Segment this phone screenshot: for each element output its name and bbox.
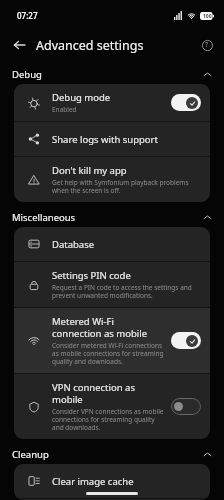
button[interactable]: Clear image cache [14,464,210,498]
button[interactable]: Toggle [171,398,201,415]
staticText: 07:27 [17,10,38,21]
staticText: Debug mode [52,91,111,104]
button[interactable]: Toggle [171,332,201,349]
button[interactable]: Toggle [171,94,201,111]
staticText: Get help with Symfonium playback problem… [52,178,201,195]
staticText: Cleanup [12,448,49,461]
staticText: Enabled [52,105,77,114]
button[interactable]: Debug mode [14,84,210,121]
button[interactable]: Back [8,34,30,56]
button[interactable]: Share logs with support [14,122,210,156]
button[interactable]: Metered Wi-Fi connection as mobile [14,308,210,373]
staticText: Clear image cache [52,475,134,488]
staticText: VPN connection as mobile [52,381,165,406]
staticText: Settings PIN code [52,269,131,282]
staticText: 100 [203,13,212,20]
staticText: Metered Wi-Fi connection as mobile [52,315,165,340]
staticText: Consider VPN connections as mobile conne… [52,407,165,432]
staticText: ? [205,40,209,50]
button[interactable]: Clear media info cache [14,499,210,500]
staticText: Database [52,238,95,251]
staticText: Consider metered Wi-Fi connections as mo… [52,341,165,366]
button[interactable]: Database [14,227,210,261]
button[interactable]: Settings PIN code [14,262,210,307]
staticText: Share logs with support [52,133,158,146]
button[interactable]: Don't kill my app [14,157,210,202]
staticText: Miscellaneous [12,211,76,224]
button[interactable]: VPN connection as mobile [14,374,210,439]
staticText: Advanced settings [36,37,144,54]
staticText: Debug [12,68,42,81]
staticText: Don't kill my app [52,164,127,177]
button[interactable]: Help [197,35,217,55]
staticText: Request a PIN code to access the setting… [52,283,201,300]
